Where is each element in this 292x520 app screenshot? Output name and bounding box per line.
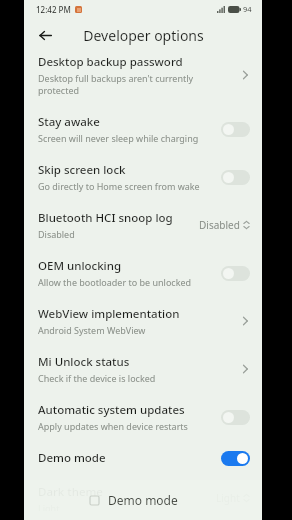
staticText: Desktop backup password — [38, 54, 183, 70]
button[interactable]: Desktop backup password — [24, 52, 262, 105]
staticText: Developer options — [83, 26, 204, 45]
staticText: Android System WebView — [38, 324, 146, 336]
staticText: Demo mode — [38, 450, 106, 466]
button[interactable]: Dark theme — [24, 475, 262, 520]
staticText: 12:42 PM — [36, 4, 71, 15]
button[interactable]: Skip screen lock — [24, 153, 262, 201]
staticText: Go directly to Home screen from wake — [38, 180, 200, 192]
button[interactable]: Demo mode — [24, 441, 262, 475]
staticText: Mi Unlock status — [38, 354, 130, 370]
button[interactable]: Toggle off — [221, 266, 250, 281]
button[interactable]: Toggle on — [221, 451, 250, 466]
staticText: Desktop full backups aren't currently pr… — [38, 72, 234, 96]
staticText: Demo mode — [108, 492, 178, 508]
staticText: Disabled — [199, 218, 240, 232]
staticText: Check if the device is locked — [38, 372, 156, 384]
staticText: OEM unlocking — [38, 258, 122, 274]
staticText: Disabled — [38, 228, 75, 240]
button[interactable]: Stay awake — [24, 105, 262, 153]
button[interactable]: Toggle off — [221, 122, 250, 137]
staticText: Skip screen lock — [38, 162, 126, 178]
button[interactable]: Automatic system updates — [24, 393, 262, 441]
staticText: Screen will never sleep while charging — [38, 132, 199, 144]
staticText: Automatic system updates — [38, 402, 185, 418]
staticText: WebView implementation — [38, 306, 180, 322]
staticText: Allow the bootloader to be unlocked — [38, 276, 192, 288]
staticText: Apply updates when device restarts — [38, 420, 188, 432]
button[interactable]: WebView implementation — [24, 297, 262, 345]
staticText: Dark theme — [38, 484, 103, 500]
staticText: 94 — [243, 4, 252, 14]
button[interactable]: Toggle off — [221, 170, 250, 185]
button[interactable]: OEM unlocking — [24, 249, 262, 297]
staticText: Bluetooth HCI snoop log — [38, 210, 173, 226]
button[interactable]: Disabled — [199, 218, 250, 232]
button[interactable]: Bluetooth HCI snoop log — [24, 201, 262, 249]
staticText: Stay awake — [38, 114, 100, 130]
button[interactable]: Toggle off — [221, 410, 250, 425]
button[interactable]: Mi Unlock status — [24, 345, 262, 393]
button[interactable]: Back — [32, 22, 58, 48]
